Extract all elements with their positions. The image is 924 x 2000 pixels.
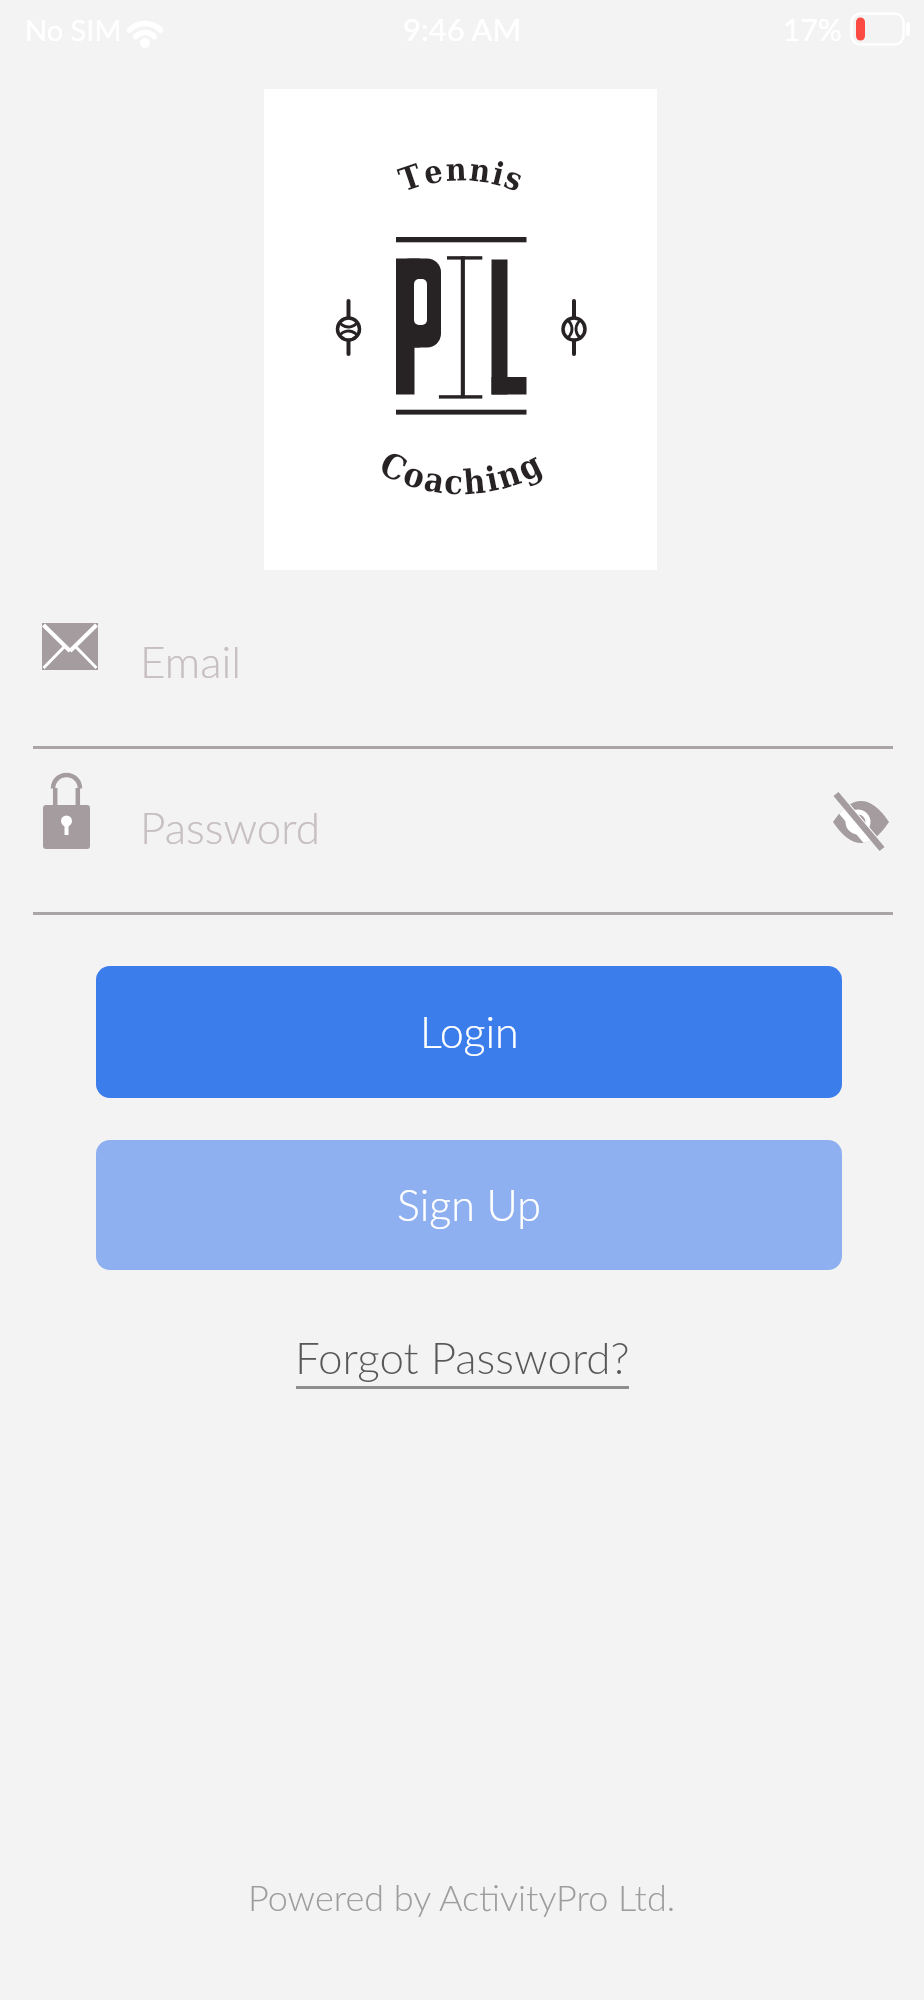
staticText: 17% [783, 11, 842, 47]
button[interactable] [33, 770, 893, 914]
staticText: Forgot Password? [295, 1331, 630, 1384]
button[interactable] [830, 791, 892, 853]
staticText: Password [140, 801, 320, 854]
button[interactable]: Login [96, 966, 842, 1098]
staticText: No SIM [25, 12, 122, 47]
staticText: Powered by ActivityPro Ltd. [248, 1875, 676, 1918]
staticText: Login [420, 1006, 519, 1058]
button[interactable]: Forgot Password? [295, 1331, 630, 1384]
button[interactable] [33, 608, 893, 748]
staticText: 9:46 AM [403, 10, 522, 47]
button[interactable]: Sign Up [96, 1140, 842, 1270]
staticText: Sign Up [397, 1179, 541, 1231]
staticText: Email [140, 635, 241, 688]
